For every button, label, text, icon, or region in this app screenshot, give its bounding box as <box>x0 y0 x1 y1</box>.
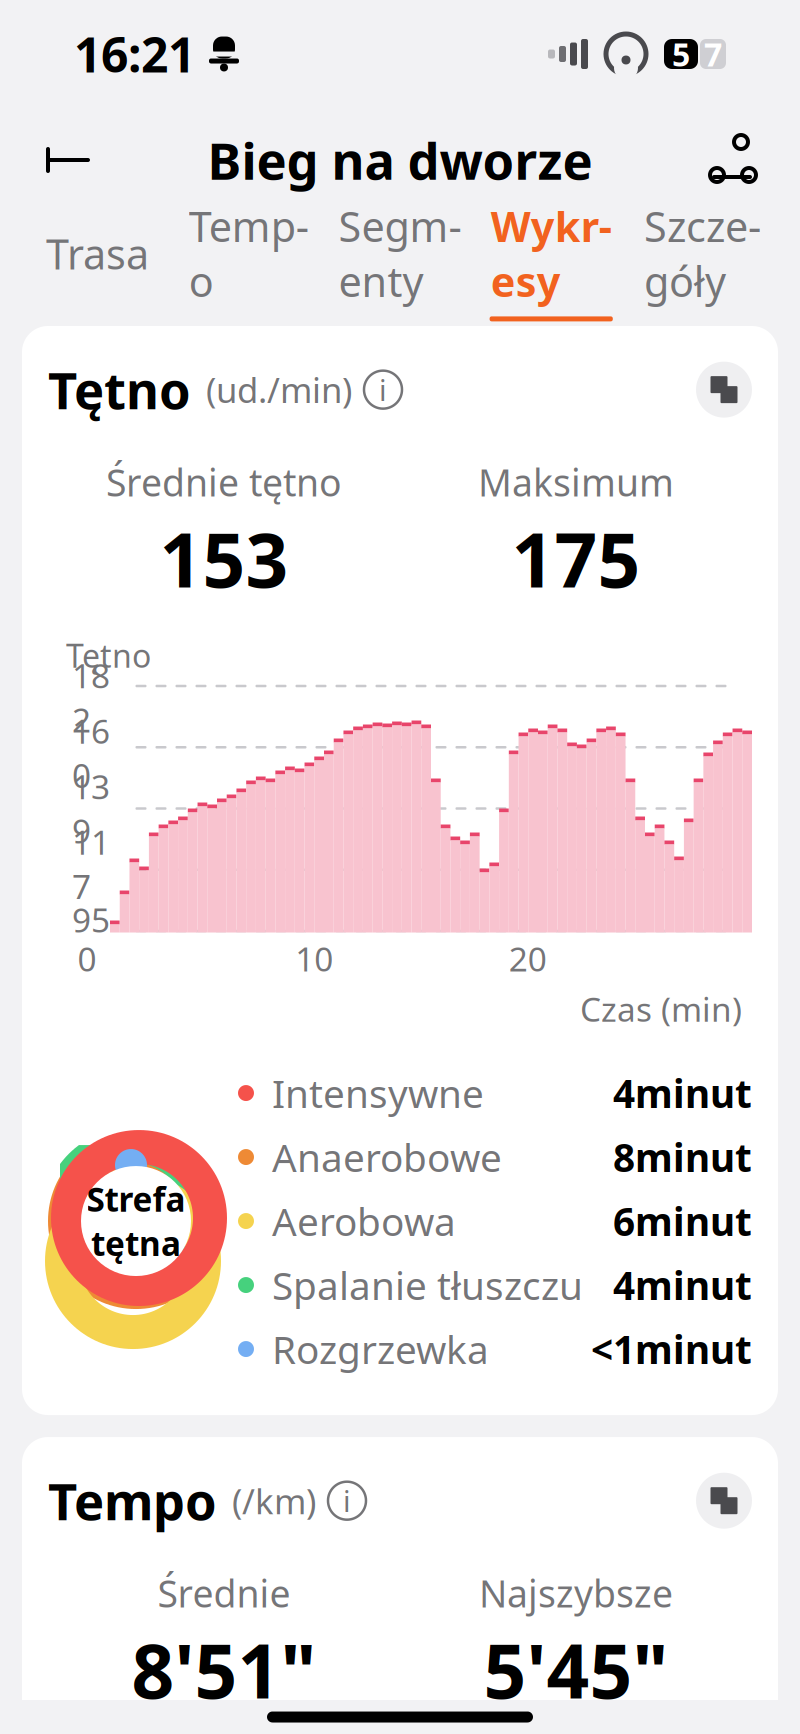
staticText: Strefa <box>86 1177 185 1221</box>
staticText: Średnie tętno <box>106 457 342 507</box>
staticText: 153 <box>159 509 288 608</box>
staticText: Maksimum <box>478 457 674 507</box>
staticText: (/km) <box>223 1478 316 1524</box>
staticText: Tętno <box>48 356 191 423</box>
staticText: 5'45" <box>483 1620 668 1719</box>
staticText: Czas (min) <box>580 987 742 1031</box>
staticText: i <box>343 1481 351 1520</box>
button[interactable]: Rozwiń <box>696 362 752 418</box>
staticText: Tempo <box>48 1467 217 1534</box>
staticText: 5 <box>672 33 690 75</box>
staticText: 6minut <box>613 1195 752 1247</box>
staticText: Wykresy <box>491 199 612 308</box>
button[interactable]: Wstecz <box>30 122 106 198</box>
button[interactable]: Tempo <box>173 220 324 300</box>
staticText: Segmenty <box>338 199 461 308</box>
button[interactable]: Wykresy <box>476 220 627 300</box>
staticText: 8'51" <box>131 1620 316 1719</box>
button[interactable]: Udostępnij <box>694 122 770 198</box>
button[interactable]: Szczegóły <box>627 220 778 300</box>
button[interactable]: Trasa <box>22 220 173 300</box>
staticText: Aerobowa <box>272 1195 456 1247</box>
staticText: 175 <box>511 509 640 608</box>
staticText: Intensywne <box>272 1067 484 1119</box>
staticText: 16:21 <box>74 22 195 86</box>
staticText: 95 <box>72 897 110 942</box>
staticText: 139 <box>72 764 110 853</box>
staticText: (ud./min) <box>197 367 352 413</box>
button[interactable]: Segmenty <box>324 220 476 300</box>
button[interactable]: Rozwiń <box>696 1473 752 1529</box>
staticText: Trasa <box>46 226 149 281</box>
staticText: Najszybsze <box>479 1568 673 1618</box>
staticText: Tempo <box>189 199 309 308</box>
staticText: Anaerobowe <box>272 1131 502 1183</box>
staticText: 160 <box>72 709 110 797</box>
staticText: Rozgrzewka <box>272 1323 489 1375</box>
staticText: 4minut <box>613 1067 752 1119</box>
staticText: 10 <box>295 936 333 981</box>
staticText: i <box>379 370 387 409</box>
staticText: tętna <box>91 1221 181 1265</box>
staticText: 8minut <box>613 1131 752 1183</box>
staticText: Średnie <box>157 1568 290 1618</box>
staticText: 117 <box>72 820 110 908</box>
staticText: 182 <box>72 653 110 742</box>
staticText: 4minut <box>613 1259 752 1311</box>
staticText: Tętno <box>66 634 151 676</box>
button[interactable]: Informacje <box>364 371 402 409</box>
staticText: 7 <box>704 33 722 75</box>
staticText: 20 <box>509 936 547 981</box>
button[interactable]: Informacje <box>328 1482 366 1520</box>
staticText: Spalanie tłuszczu <box>272 1259 583 1311</box>
staticText: <1minut <box>591 1323 752 1375</box>
staticText: Szczegóły <box>644 199 761 308</box>
staticText: Bieg na dworze <box>207 126 592 194</box>
staticText: 0 <box>77 936 96 981</box>
